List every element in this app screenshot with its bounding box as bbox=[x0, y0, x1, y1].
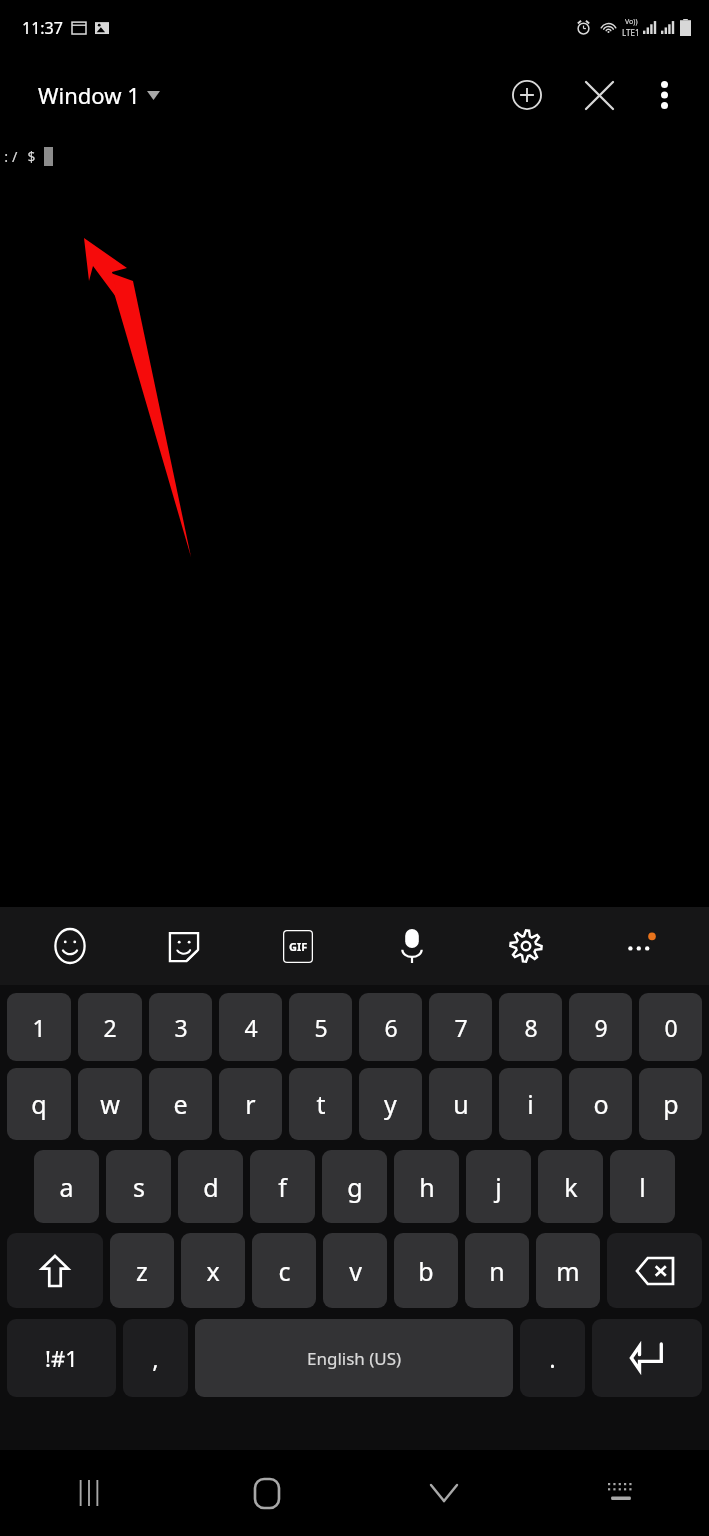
button[interactable]: b bbox=[394, 1233, 458, 1308]
button[interactable]: !#1 bbox=[7, 1319, 116, 1397]
button[interactable]: l bbox=[610, 1150, 675, 1223]
button[interactable]: 1 bbox=[7, 993, 71, 1061]
button[interactable]: o bbox=[569, 1068, 632, 1140]
button[interactable]: Stickers bbox=[127, 907, 241, 985]
button[interactable]: 0 bbox=[639, 993, 702, 1061]
staticText: English (US) bbox=[307, 1347, 402, 1370]
staticText: !#1 bbox=[45, 1343, 78, 1373]
staticText: n bbox=[489, 1254, 505, 1288]
staticText: 0 bbox=[664, 1012, 678, 1043]
button[interactable]: Switch keyboard bbox=[532, 1450, 709, 1536]
button[interactable]: x bbox=[181, 1233, 245, 1308]
button[interactable]: Shift bbox=[7, 1233, 103, 1308]
staticText: 5 bbox=[314, 1012, 328, 1043]
staticText: c bbox=[278, 1254, 291, 1288]
staticText: b bbox=[418, 1254, 434, 1288]
button[interactable]: 9 bbox=[569, 993, 632, 1061]
staticText: z bbox=[136, 1254, 148, 1288]
staticText: m bbox=[556, 1254, 580, 1288]
button[interactable]: i bbox=[499, 1068, 562, 1140]
staticText: :/ $ bbox=[2, 147, 36, 166]
button[interactable]: 4 bbox=[219, 993, 282, 1061]
button[interactable]: p bbox=[639, 1068, 702, 1140]
button[interactable]: f bbox=[250, 1150, 315, 1223]
staticText: LTE1 bbox=[622, 27, 640, 38]
staticText: 8 bbox=[524, 1012, 538, 1043]
button[interactable]: s bbox=[106, 1150, 171, 1223]
button[interactable]: w bbox=[78, 1068, 142, 1140]
button[interactable]: More options bbox=[639, 70, 689, 120]
staticText: r bbox=[245, 1087, 256, 1121]
button[interactable]: , bbox=[123, 1319, 188, 1397]
button[interactable]: 8 bbox=[499, 993, 562, 1061]
button[interactable]: e bbox=[149, 1068, 212, 1140]
button[interactable]: h bbox=[394, 1150, 459, 1223]
button[interactable]: Voice input bbox=[355, 907, 469, 985]
staticText: i bbox=[527, 1087, 534, 1121]
button[interactable]: English (US) bbox=[195, 1319, 513, 1397]
staticText: l bbox=[639, 1170, 646, 1204]
button[interactable]: Keyboard settings bbox=[469, 907, 583, 985]
staticText: o bbox=[593, 1087, 609, 1121]
staticText: 4 bbox=[244, 1012, 258, 1043]
staticText: g bbox=[347, 1170, 363, 1204]
staticText: s bbox=[133, 1170, 145, 1204]
staticText: Window 1 bbox=[38, 80, 140, 110]
staticText: k bbox=[564, 1170, 578, 1204]
staticText: a bbox=[59, 1170, 74, 1204]
button[interactable]: Recent apps bbox=[0, 1450, 178, 1536]
button[interactable]: GIF bbox=[241, 907, 355, 985]
staticText: 9 bbox=[594, 1012, 608, 1043]
button[interactable]: New window bbox=[501, 69, 553, 121]
button[interactable]: u bbox=[429, 1068, 492, 1140]
button[interactable]: r bbox=[219, 1068, 282, 1140]
button[interactable]: More bbox=[583, 907, 697, 985]
staticText: t bbox=[316, 1087, 326, 1121]
button[interactable]: 2 bbox=[78, 993, 142, 1061]
staticText: f bbox=[278, 1170, 287, 1204]
button[interactable]: a bbox=[34, 1150, 99, 1223]
staticText: 2 bbox=[103, 1012, 117, 1043]
button[interactable]: v bbox=[323, 1233, 387, 1308]
staticText: p bbox=[663, 1087, 679, 1121]
staticText: h bbox=[419, 1170, 435, 1204]
button[interactable]: 7 bbox=[429, 993, 492, 1061]
button[interactable]: Window 1 bbox=[34, 74, 164, 116]
button[interactable]: q bbox=[7, 1068, 71, 1140]
staticText: v bbox=[349, 1254, 362, 1288]
button[interactable]: Backspace bbox=[607, 1233, 702, 1308]
button[interactable]: 3 bbox=[149, 993, 212, 1061]
button[interactable]: 5 bbox=[289, 993, 352, 1061]
staticText: e bbox=[173, 1087, 188, 1121]
button[interactable]: c bbox=[252, 1233, 316, 1308]
button[interactable]: m bbox=[536, 1233, 600, 1308]
staticText: Vo)) bbox=[625, 17, 638, 27]
staticText: q bbox=[31, 1087, 47, 1121]
staticText: 11:37 bbox=[22, 17, 63, 39]
button[interactable]: n bbox=[465, 1233, 529, 1308]
staticText: 7 bbox=[454, 1012, 468, 1043]
button[interactable]: g bbox=[322, 1150, 387, 1223]
button[interactable]: 6 bbox=[359, 993, 422, 1061]
staticText: GIF bbox=[289, 939, 308, 954]
button[interactable]: t bbox=[289, 1068, 352, 1140]
button[interactable]: Close window bbox=[573, 69, 625, 121]
staticText: d bbox=[203, 1170, 219, 1204]
button[interactable]: k bbox=[538, 1150, 603, 1223]
staticText: 3 bbox=[174, 1012, 188, 1043]
button[interactable]: Emoji bbox=[12, 907, 127, 985]
staticText: x bbox=[206, 1254, 220, 1288]
button[interactable]: z bbox=[110, 1233, 174, 1308]
button[interactable]: Enter bbox=[592, 1319, 702, 1397]
button[interactable]: Hide keyboard bbox=[355, 1450, 532, 1536]
staticText: 1 bbox=[32, 1012, 46, 1043]
staticText: . bbox=[549, 1342, 556, 1375]
button[interactable]: Home bbox=[178, 1450, 355, 1536]
button[interactable]: . bbox=[520, 1319, 585, 1397]
button[interactable]: d bbox=[178, 1150, 243, 1223]
staticText: w bbox=[100, 1087, 120, 1121]
staticText: j bbox=[495, 1170, 502, 1204]
button[interactable]: j bbox=[466, 1150, 531, 1223]
button[interactable]: y bbox=[359, 1068, 422, 1140]
staticText: , bbox=[152, 1342, 159, 1375]
